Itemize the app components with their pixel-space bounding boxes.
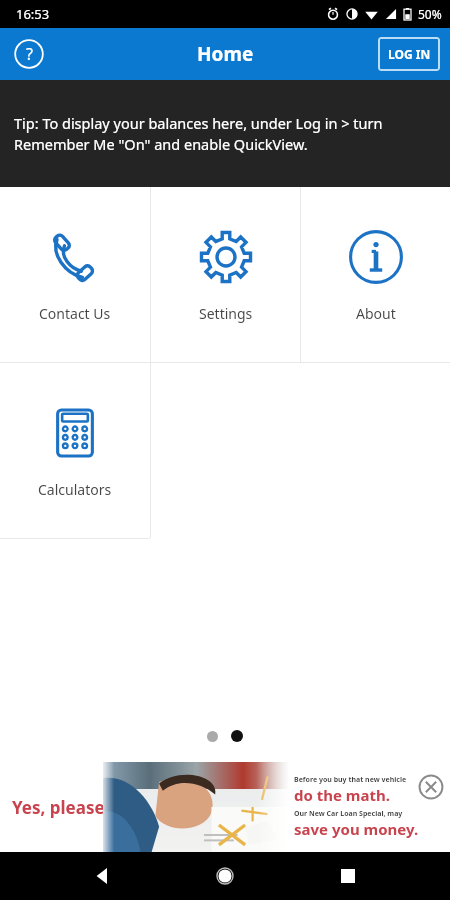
staticText: Settings (199, 304, 253, 323)
button[interactable]: Home (205, 856, 245, 896)
button[interactable]: Contact Us (0, 187, 150, 362)
staticText: 50% (418, 6, 442, 22)
button[interactable]: LOG IN (378, 37, 440, 71)
staticText: do the math. (294, 785, 390, 805)
staticText: ? (26, 43, 33, 65)
staticText: Home (197, 41, 254, 67)
button[interactable]: Close ad (418, 774, 444, 800)
button[interactable]: Calculators (0, 363, 150, 538)
staticText: Yes, please. (12, 796, 110, 819)
staticText: LOG IN (388, 46, 431, 62)
staticText: save you money. (294, 819, 419, 839)
button[interactable]: Back (83, 856, 123, 896)
staticText: 16:53 (16, 5, 50, 23)
staticText: Before you buy that new vehicle (294, 775, 407, 785)
staticText: Calculators (38, 480, 112, 499)
staticText: Our New Car Loan Special, may (294, 809, 403, 819)
staticText: Tip: To display your balances here, unde… (14, 113, 436, 155)
button[interactable]: About (301, 187, 450, 362)
staticText: About (356, 304, 396, 323)
button[interactable]: Recent apps (328, 856, 368, 896)
staticText: Contact Us (39, 304, 111, 323)
button[interactable]: Settings (151, 187, 300, 362)
button[interactable]: Help (10, 35, 48, 73)
